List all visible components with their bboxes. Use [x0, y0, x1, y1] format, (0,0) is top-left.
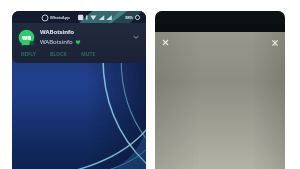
staticText: WABotsinfo	[40, 28, 75, 36]
button[interactable]: BLOCK	[48, 50, 69, 59]
button[interactable]: Expand notification	[131, 32, 141, 42]
staticText: 38%	[125, 15, 133, 20]
button[interactable]: MUTE	[79, 50, 98, 59]
staticText: REPLY	[21, 51, 36, 58]
staticText: MUTE	[81, 51, 96, 58]
staticText: BLOCK	[50, 51, 67, 58]
staticText: wa	[22, 34, 32, 42]
staticText: WhatsApp	[50, 15, 70, 20]
button[interactable]: wa	[12, 23, 146, 63]
staticText: WABotsinfo	[40, 38, 73, 46]
button[interactable]: Dismiss	[269, 37, 280, 48]
button[interactable]: REPLY	[19, 50, 38, 59]
button[interactable]: Close	[160, 37, 171, 48]
